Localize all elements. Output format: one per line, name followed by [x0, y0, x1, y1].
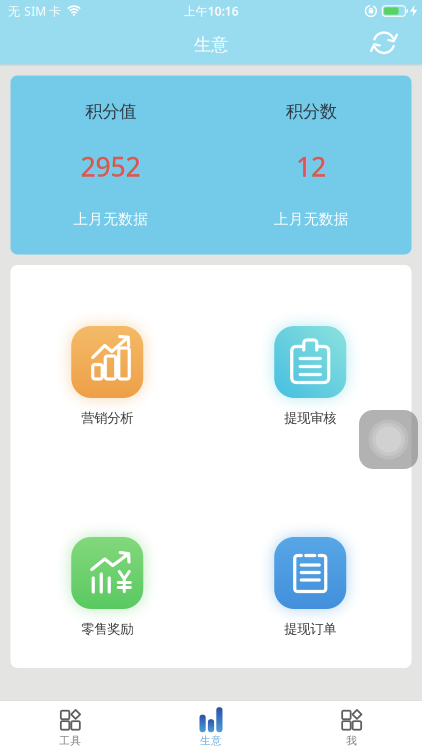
button[interactable]: 生意	[141, 701, 281, 750]
button[interactable]: Refresh	[371, 31, 422, 55]
staticText: 我	[346, 734, 357, 747]
staticText: 上午10:16	[183, 3, 238, 19]
button[interactable]: 我	[281, 701, 422, 750]
staticText: 提现订单	[284, 621, 336, 637]
staticText: 工具	[59, 734, 81, 747]
button[interactable]: 零售奖励	[7, 537, 207, 639]
button[interactable]: 提现订单	[210, 537, 410, 639]
staticText: 积分值	[85, 101, 136, 122]
staticText: 12	[296, 149, 326, 184]
staticText: 上月无数据	[73, 210, 148, 228]
staticText: 无 SIM 卡	[8, 3, 61, 19]
staticText: 提现审核	[284, 410, 336, 426]
staticText: 生意	[194, 34, 228, 55]
button[interactable]: 提现审核	[210, 326, 410, 428]
staticText: 2952	[81, 149, 141, 184]
staticText: 上月无数据	[274, 210, 349, 228]
button[interactable]: 营销分析	[7, 326, 207, 428]
staticText: 积分数	[286, 101, 337, 122]
staticText: 零售奖励	[81, 621, 133, 637]
staticText: 营销分析	[81, 410, 133, 426]
button[interactable]: 工具	[0, 701, 141, 750]
button[interactable]: AssistiveTouch	[359, 410, 418, 469]
staticText: 生意	[200, 734, 222, 747]
